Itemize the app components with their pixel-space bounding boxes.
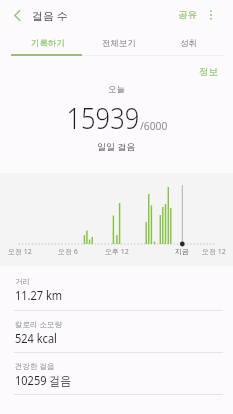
staticText: 건강한 걸음: [15, 361, 55, 371]
staticText: 성취: [180, 38, 197, 49]
staticText: 오늘: [108, 84, 125, 95]
staticText: 오후 12: [105, 247, 129, 257]
staticText: 오전 6: [58, 247, 78, 257]
button[interactable]: 성취: [153, 0, 223, 55]
staticText: 오전 12: [8, 247, 32, 257]
staticText: 지금: [175, 247, 189, 256]
staticText: 11.27 km: [15, 287, 62, 304]
staticText: 거리: [15, 277, 30, 286]
button[interactable]: 정보: [193, 64, 224, 80]
staticText: 걸음 수: [32, 8, 68, 23]
button[interactable]: 칼로리 소모량: [0, 310, 233, 352]
staticText: 10259 걸음: [15, 372, 72, 389]
staticText: 칼로리 소모량: [15, 319, 62, 329]
staticText: 일일 걸음: [97, 140, 136, 152]
button[interactable]: 기록하기: [13, 0, 83, 55]
staticText: 15939: [66, 97, 139, 138]
staticText: /6000: [140, 119, 167, 133]
staticText: 전체보기: [102, 38, 136, 49]
staticText: 오전 12: [202, 247, 226, 257]
button[interactable]: 전체보기: [84, 0, 154, 55]
staticText: 기록하기: [31, 38, 65, 49]
staticText: 공유: [178, 9, 197, 21]
button[interactable]: 건강한 걸음: [0, 352, 233, 394]
staticText: 524 kcal: [15, 330, 57, 347]
button[interactable]: 거리: [0, 268, 233, 310]
staticText: 정보: [199, 66, 218, 78]
button[interactable]: More options: [200, 4, 222, 26]
button[interactable]: 공유: [172, 5, 203, 25]
button[interactable]: Back: [6, 4, 28, 26]
